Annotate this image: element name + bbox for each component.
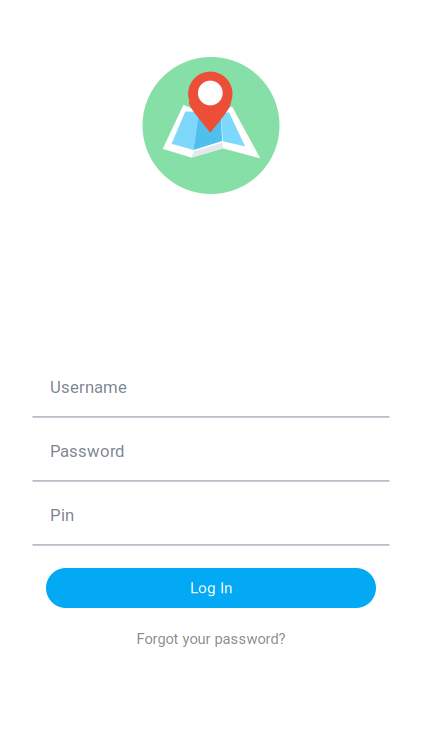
button[interactable]: Forgot your password?	[101, 630, 321, 648]
staticText: Username	[50, 378, 127, 397]
button[interactable]: Pin	[32, 482, 389, 546]
button[interactable]: Log In	[46, 568, 376, 608]
staticText: Log In	[190, 579, 232, 597]
staticText: Pin	[50, 506, 74, 525]
staticText: Forgot your password?	[136, 630, 285, 648]
staticText: Password	[50, 442, 124, 461]
button[interactable]: Username	[32, 354, 389, 418]
button[interactable]: Password	[32, 418, 389, 482]
